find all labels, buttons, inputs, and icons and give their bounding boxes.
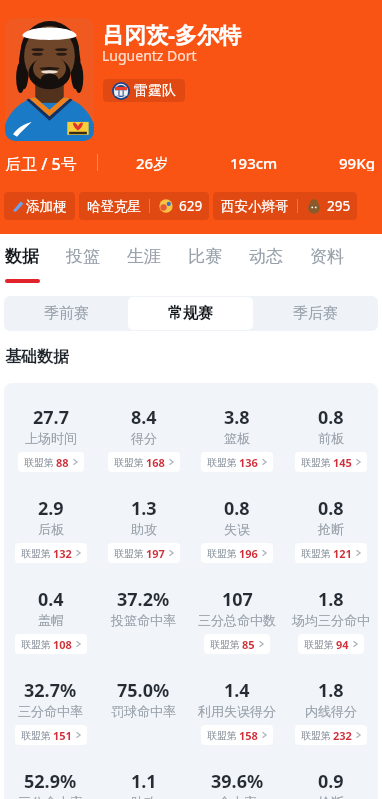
button[interactable]: 常规赛 [128, 297, 253, 330]
button[interactable]: 联盟第 [201, 452, 273, 472]
staticText: 雷霆队 [134, 82, 176, 100]
staticText: 盖帽 [38, 612, 64, 628]
staticText: 前板 [318, 430, 344, 446]
button[interactable]: 联盟第 [295, 452, 367, 472]
staticText: 629 [179, 197, 203, 215]
staticText: 投篮 [66, 246, 100, 267]
staticText: 西安小辫哥 [221, 198, 289, 215]
staticText: 助攻 [131, 794, 157, 799]
staticText: 145 [333, 455, 352, 470]
staticText: 2.9 [38, 496, 64, 521]
staticText: 158 [239, 728, 258, 743]
staticText: 121 [333, 546, 352, 561]
staticText: 197 [146, 546, 165, 561]
staticText: 0.8 [318, 405, 344, 430]
staticText: 107 [222, 587, 253, 612]
staticText: 3.8 [224, 405, 250, 430]
staticText: Luguentz Dort [102, 46, 197, 65]
staticText: 27.7 [33, 405, 69, 430]
staticText: 联盟第 [304, 638, 334, 651]
staticText: 联盟第 [210, 638, 240, 651]
staticText: 上场时间 [25, 430, 77, 446]
button[interactable]: 联盟第 [201, 725, 273, 745]
staticText: 哈登克星 [87, 198, 141, 215]
staticText: 季后赛 [293, 304, 338, 323]
staticText: 联盟第 [114, 547, 144, 560]
button[interactable]: 雷霆队 [103, 79, 185, 102]
button[interactable]: 联盟第 [15, 634, 87, 654]
staticText: 37.2% [117, 587, 170, 612]
staticText: 场均三分命中 [292, 612, 370, 628]
button[interactable]: Add tag [4, 192, 75, 220]
staticText: 联盟第 [21, 729, 51, 742]
staticText: 助攻 [131, 521, 157, 537]
staticText: 136 [239, 455, 258, 470]
staticText: 1.4 [224, 678, 250, 703]
other: Add tag [12, 200, 24, 212]
staticText: 联盟第 [21, 547, 51, 560]
button[interactable]: 比赛 [187, 234, 223, 282]
staticText: 0.8 [224, 496, 250, 521]
staticText: 得分 [131, 430, 157, 446]
button[interactable]: 联盟第 [201, 543, 273, 563]
staticText: 三分命中率 [18, 794, 83, 799]
staticText: 99Kg [339, 153, 375, 171]
staticText: 投篮命中率 [111, 612, 176, 628]
staticText: 后卫 / 5号 [5, 153, 77, 171]
button[interactable]: 资料 [309, 234, 345, 282]
staticText: 基础数据 [5, 347, 69, 367]
staticText: 比赛 [188, 246, 222, 267]
staticText: 数据 [5, 246, 39, 267]
button[interactable]: 联盟第 [298, 634, 364, 654]
staticText: 75.0% [117, 678, 170, 703]
staticText: 吕冈茨-多尔特 [102, 19, 242, 49]
button[interactable]: 联盟第 [15, 725, 87, 745]
button[interactable]: 哈登克星 [79, 192, 209, 220]
staticText: 联盟第 [114, 456, 144, 469]
button[interactable]: 动态 [248, 234, 284, 282]
staticText: 资料 [310, 246, 344, 267]
button[interactable]: 季前赛 [4, 297, 128, 330]
staticText: 动态 [249, 246, 283, 267]
staticText: 失误 [224, 521, 250, 537]
button[interactable]: 西安小辫哥 [213, 192, 357, 220]
button[interactable]: 季后赛 [253, 297, 378, 330]
staticText: 52.9% [24, 769, 77, 794]
staticText: 1.1 [131, 769, 157, 794]
staticText: 151 [53, 728, 72, 743]
staticText: 后板 [38, 521, 64, 537]
staticText: 三分命中率 [18, 703, 83, 719]
staticText: 295 [327, 197, 351, 215]
button[interactable]: 联盟第 [295, 725, 367, 745]
staticText: 1.8 [318, 587, 344, 612]
button[interactable]: 联盟第 [108, 543, 180, 563]
button[interactable]: 生涯 [126, 234, 162, 282]
staticText: 1.3 [131, 496, 157, 521]
staticText: 196 [239, 546, 258, 561]
staticText: 232 [333, 728, 352, 743]
staticText: 39.6% [211, 769, 264, 794]
staticText: 篮板 [224, 430, 250, 446]
staticText: 108 [53, 637, 72, 652]
button[interactable]: 联盟第 [204, 634, 270, 654]
button[interactable]: 投篮 [65, 234, 101, 282]
button[interactable]: 数据 [4, 234, 40, 282]
staticText: 生涯 [127, 246, 161, 267]
staticText: 季前赛 [44, 304, 89, 323]
staticText: 内线得分 [305, 703, 357, 719]
staticText: 168 [146, 455, 165, 470]
button[interactable]: 联盟第 [295, 543, 367, 563]
staticText: 联盟第 [21, 638, 51, 651]
staticText: 联盟第 [301, 547, 331, 560]
staticText: 三分总命中数 [198, 612, 276, 628]
staticText: 0.8 [318, 496, 344, 521]
staticText: 联盟第 [301, 729, 331, 742]
staticText: 抢断 [318, 521, 344, 537]
button[interactable]: 联盟第 [108, 452, 180, 472]
button[interactable]: 联盟第 [15, 543, 87, 563]
staticText: 132 [53, 546, 72, 561]
button[interactable]: 联盟第 [18, 452, 84, 472]
staticText: 0.9 [318, 769, 344, 794]
staticText: 32.7% [24, 678, 77, 703]
staticText: 联盟第 [207, 547, 237, 560]
